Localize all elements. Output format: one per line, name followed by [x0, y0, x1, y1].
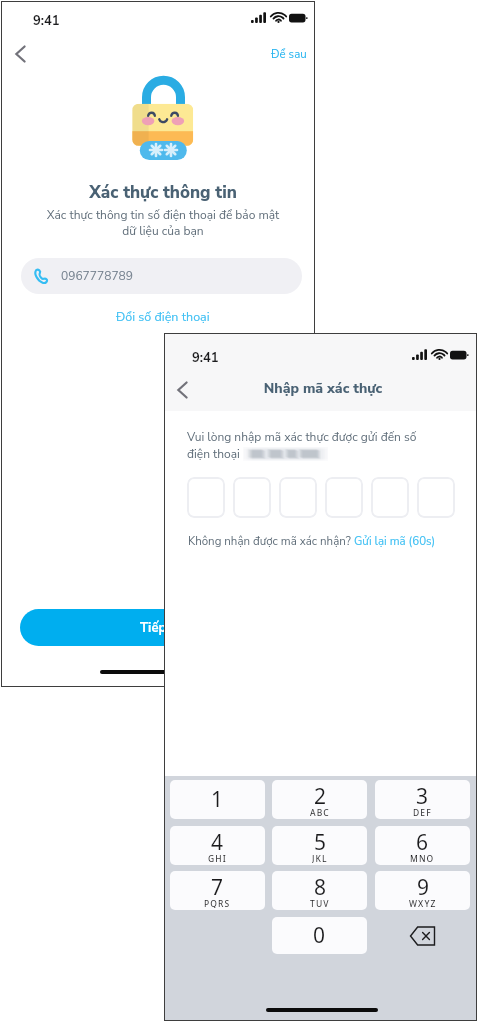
- staticText: GHI: [208, 853, 227, 863]
- staticText: DEF: [413, 807, 432, 817]
- button[interactable]: 5: [272, 826, 367, 865]
- staticText: Để sau: [271, 46, 307, 62]
- staticText: Xác thực thông tin: [9, 181, 317, 204]
- staticText: 3: [416, 782, 429, 811]
- button[interactable]: Digit 2: [233, 477, 271, 518]
- button[interactable]: 0: [272, 917, 367, 954]
- button[interactable]: 8: [272, 871, 367, 910]
- staticText: điện thoại: [187, 446, 243, 462]
- staticText: PQRS: [204, 898, 231, 908]
- button[interactable]: Digit 6: [417, 477, 455, 518]
- staticText: Đổi số điện thoại: [116, 308, 210, 325]
- button[interactable]: Back: [168, 375, 198, 405]
- staticText: 7: [211, 873, 224, 902]
- staticText: WXYZ: [409, 898, 437, 908]
- button[interactable]: 1: [170, 780, 265, 819]
- button[interactable]: Tiếp tục: [20, 609, 308, 646]
- button[interactable]: Gửi lại mã (60s): [354, 533, 436, 549]
- button[interactable]: Delete: [375, 917, 470, 954]
- staticText: Vui lòng nhập mã xác thực được gửi đến s…: [187, 429, 417, 445]
- staticText: 6: [416, 828, 429, 857]
- staticText: 0: [313, 921, 326, 950]
- staticText: 0967778789: [61, 268, 134, 284]
- button[interactable]: 7: [170, 871, 265, 910]
- button[interactable]: Digit 4: [325, 477, 363, 518]
- button[interactable]: 6: [375, 826, 470, 865]
- staticText: ABC: [310, 807, 330, 817]
- button[interactable]: 3: [375, 780, 470, 819]
- staticText: Không nhận được mã xác nhận?: [188, 533, 354, 549]
- staticText: Xác thực thông tin số điện thoại để bảo …: [9, 207, 317, 239]
- button[interactable]: 4: [170, 826, 265, 865]
- button[interactable]: 2: [272, 780, 367, 819]
- staticText: 2: [314, 782, 327, 811]
- button[interactable]: Digit 1: [187, 477, 225, 518]
- staticText: TUV: [310, 898, 330, 908]
- staticText: Nhập mã xác thực: [169, 379, 477, 398]
- staticText: 1: [211, 785, 224, 814]
- button[interactable]: Back: [6, 39, 36, 69]
- staticText: 9: [417, 873, 430, 902]
- staticText: 9:41: [33, 12, 60, 30]
- button[interactable]: Để sau: [266, 42, 312, 66]
- staticText: 5: [314, 828, 327, 857]
- button[interactable]: 9: [375, 871, 470, 910]
- button[interactable]: Digit 5: [371, 477, 409, 518]
- staticText: JKL: [312, 853, 328, 863]
- staticText: 9:41: [192, 349, 219, 367]
- button[interactable]: Digit 3: [279, 477, 317, 518]
- button[interactable]: Đổi số điện thoại: [110, 304, 216, 329]
- staticText: Gửi lại mã (60s): [354, 533, 436, 549]
- staticText: 8: [314, 873, 327, 902]
- staticText: Tiếp tục: [140, 619, 189, 637]
- staticText: MNO: [410, 853, 435, 863]
- button[interactable]: 0967778789: [21, 258, 302, 294]
- staticText: 4: [211, 828, 224, 857]
